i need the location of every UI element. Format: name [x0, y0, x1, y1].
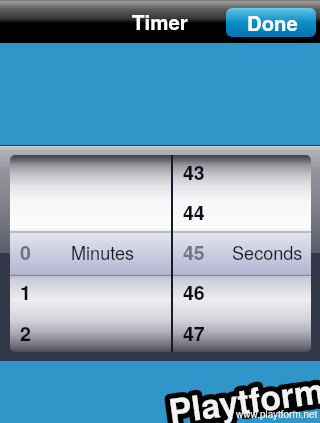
- staticText: Seconds: [232, 239, 303, 265]
- staticText: 47: [183, 319, 205, 347]
- staticText: 0: [20, 238, 31, 266]
- button[interactable]: Done: [226, 8, 316, 37]
- staticText: 44: [183, 198, 205, 226]
- staticText: 1: [20, 278, 31, 306]
- staticText: Playtform: [166, 365, 320, 423]
- staticText: Timer: [132, 7, 188, 36]
- staticText: 43: [183, 158, 205, 186]
- staticText: Done: [247, 8, 298, 37]
- staticText: 45: [183, 238, 205, 266]
- staticText: 2: [20, 319, 31, 347]
- staticText: www.playtform.net: [236, 407, 318, 421]
- staticText: Minutes: [71, 239, 135, 265]
- staticText: Playtform: [166, 365, 320, 423]
- staticText: 46: [183, 278, 205, 306]
